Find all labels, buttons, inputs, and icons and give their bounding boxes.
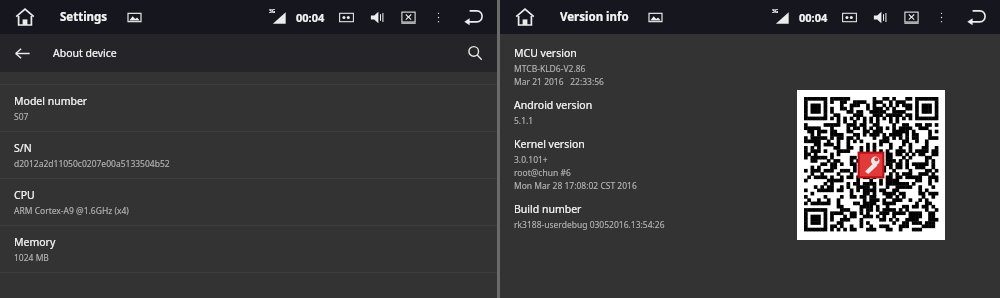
- button[interactable]: Storage: [842, 10, 857, 25]
- staticText: MCU version: [514, 46, 577, 60]
- staticText: ARM Cortex-A9 @1.6GHz (x4): [14, 205, 129, 217]
- button[interactable]: Gallery: [649, 11, 662, 24]
- staticText: S/N: [14, 141, 32, 155]
- staticText: 3G: [772, 8, 779, 15]
- staticText: S07: [14, 111, 29, 123]
- staticText: Kernel version: [514, 137, 585, 151]
- button[interactable]: Screen off: [401, 10, 416, 25]
- staticText: Mar 21 2016 22:33:56: [514, 76, 604, 88]
- staticText: 00:04: [799, 10, 828, 25]
- staticText: 3G: [269, 8, 276, 15]
- button[interactable]: Model number: [0, 85, 497, 131]
- staticText: Settings: [60, 9, 108, 25]
- staticText: 00:04: [296, 10, 325, 25]
- button[interactable]: CPU: [0, 179, 497, 225]
- staticText: rk3188-userdebug 03052016.13:54:26: [514, 219, 665, 231]
- staticText: About device: [53, 46, 117, 60]
- button[interactable]: More options: [432, 11, 445, 24]
- staticText: Mon Mar 28 17:08:02 CST 2016: [514, 180, 637, 192]
- button[interactable]: Build number: [500, 202, 1000, 232]
- button[interactable]: Gallery: [128, 11, 141, 24]
- button[interactable]: Volume: [370, 10, 385, 25]
- staticText: 3.0.101+: [514, 154, 548, 166]
- staticText: Model number: [14, 94, 88, 108]
- button[interactable]: Search: [467, 45, 483, 61]
- button[interactable]: Home: [514, 6, 536, 28]
- staticText: MTCB-KLD6-V2.86: [514, 63, 586, 75]
- staticText: root@chun #6: [514, 167, 571, 179]
- staticText: CPU: [14, 188, 35, 202]
- button[interactable]: Back: [966, 6, 988, 28]
- staticText: 1024 MB: [14, 252, 49, 264]
- button[interactable]: Home: [14, 6, 36, 28]
- button[interactable]: S/N: [0, 132, 497, 178]
- button[interactable]: Storage: [339, 10, 354, 25]
- staticText: Memory: [14, 235, 56, 249]
- button[interactable]: Memory: [0, 226, 497, 272]
- button[interactable]: Kernel version: [500, 137, 1000, 193]
- button[interactable]: MCU version: [500, 46, 1000, 89]
- button[interactable]: Android version: [500, 98, 1000, 128]
- button[interactable]: More options: [935, 11, 948, 24]
- button[interactable]: Volume: [873, 10, 888, 25]
- button[interactable]: Back: [463, 6, 485, 28]
- button[interactable]: Navigate up: [14, 45, 31, 62]
- staticText: Android version: [514, 98, 593, 112]
- staticText: Build number: [514, 202, 582, 216]
- staticText: d2012a2d11050c0207e00a5133504b52: [14, 158, 170, 170]
- staticText: 5.1.1: [514, 115, 534, 127]
- button[interactable]: Screen off: [904, 10, 919, 25]
- staticText: Version info: [560, 9, 629, 25]
